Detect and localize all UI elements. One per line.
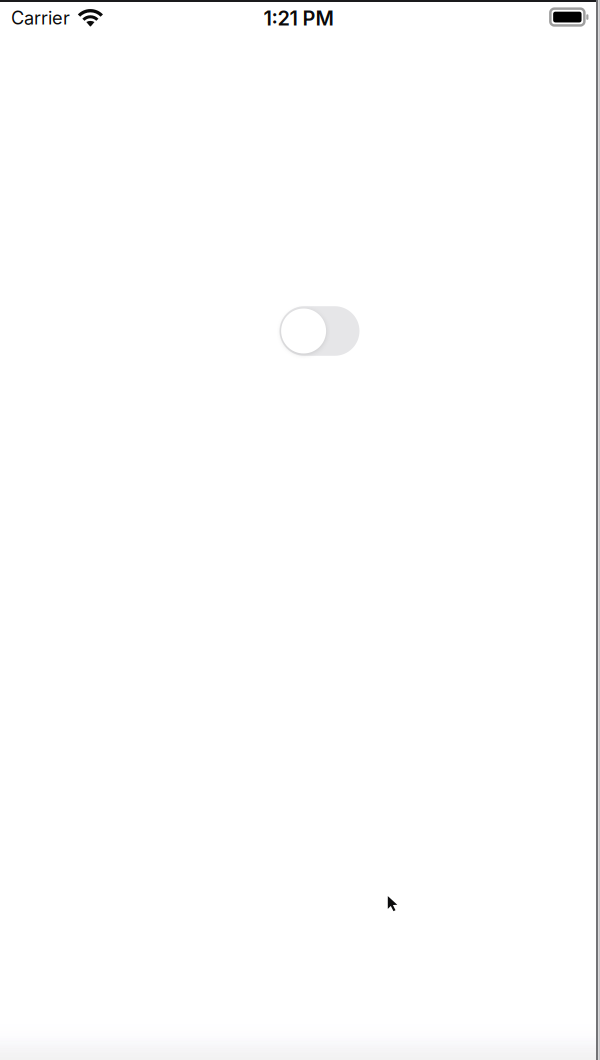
button[interactable]: Toggle	[279, 306, 359, 356]
staticText: Carrier	[11, 7, 70, 29]
staticText: 1:21 PM	[264, 6, 334, 30]
